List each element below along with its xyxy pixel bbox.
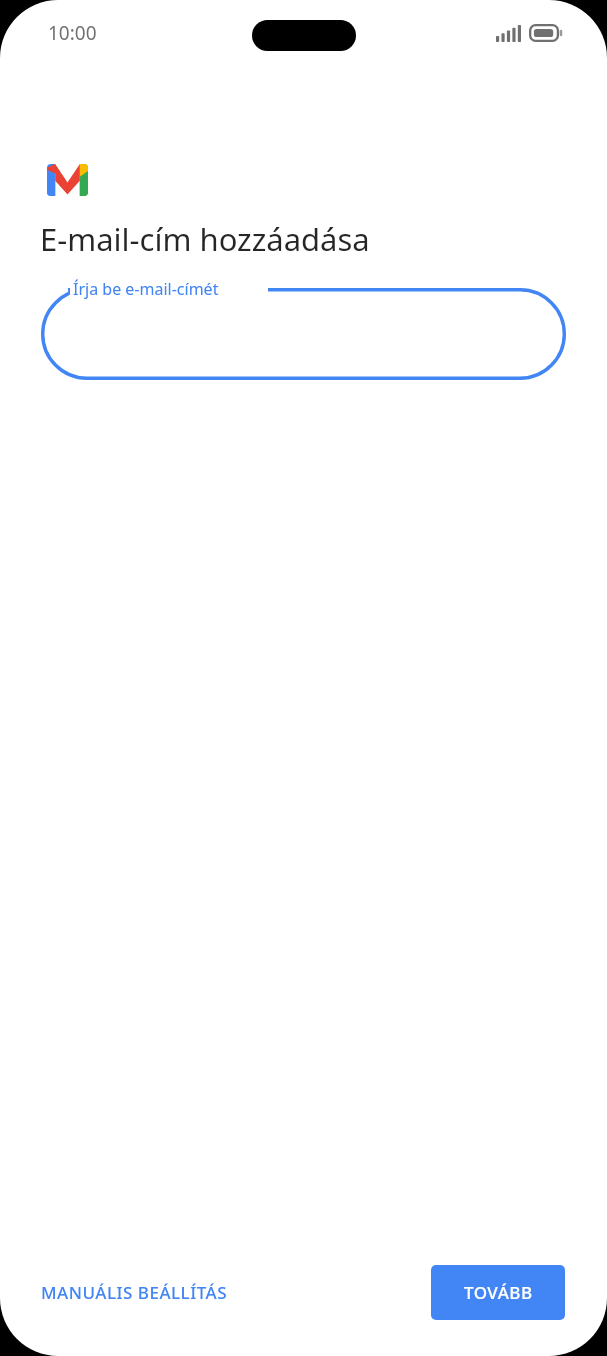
staticText: 10:00 [48,20,97,46]
staticText: Írja be e-mail-címét [73,278,219,300]
other: Signal strength [496,25,521,42]
staticText: MANUÁLIS BEÁLLÍTÁS [41,1281,228,1304]
staticText: E-mail-cím hozzáadása [40,218,370,260]
button[interactable]: Írja be e-mail-címét [41,288,566,380]
button[interactable]: MANUÁLIS BEÁLLÍTÁS [33,1271,236,1314]
other: Gmail [47,164,88,196]
staticText: TOVÁBB [464,1281,533,1304]
button[interactable]: TOVÁBB [431,1265,565,1320]
other: Battery [529,24,564,42]
